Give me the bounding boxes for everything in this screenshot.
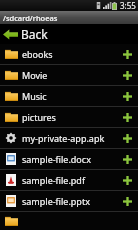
button[interactable]: Back (0, 24, 138, 44)
button[interactable]: Add Music (121, 90, 133, 102)
staticText: sample-file.docx (22, 153, 121, 165)
button[interactable]: sample-file.pdf (0, 170, 138, 190)
button[interactable]: Add my-private-app.apk (121, 132, 133, 144)
button[interactable]: pictures (0, 107, 138, 127)
staticText: Movie (22, 69, 121, 81)
button[interactable]: sample-file.docx (0, 149, 138, 169)
button[interactable]: my-private-app.apk (0, 128, 138, 148)
staticText: /sdcard/rhoeas (3, 13, 58, 23)
staticText: Back (21, 26, 48, 42)
staticText: ebooks (22, 48, 121, 60)
button[interactable]: Add Movie (121, 69, 133, 81)
staticText: Music (22, 90, 121, 102)
button[interactable]: Movie (0, 65, 138, 85)
button[interactable]: Add sample-file.pdf (121, 174, 133, 186)
button[interactable]: Add sample-file.pptx (121, 195, 133, 207)
button[interactable] (0, 212, 138, 230)
button[interactable]: Add ebooks (121, 48, 133, 60)
button[interactable]: sample-file.pptx (0, 191, 138, 211)
staticText: my-private-app.apk (22, 132, 121, 144)
staticText: sample-file.pdf (22, 174, 121, 186)
staticText: 3:55 (120, 0, 136, 11)
button[interactable]: Add sample-file.docx (121, 153, 133, 165)
button[interactable]: ebooks (0, 44, 138, 64)
button[interactable]: Music (0, 86, 138, 106)
staticText: pictures (22, 111, 121, 123)
button[interactable]: Add pictures (121, 111, 133, 123)
staticText: sample-file.pptx (22, 195, 121, 207)
